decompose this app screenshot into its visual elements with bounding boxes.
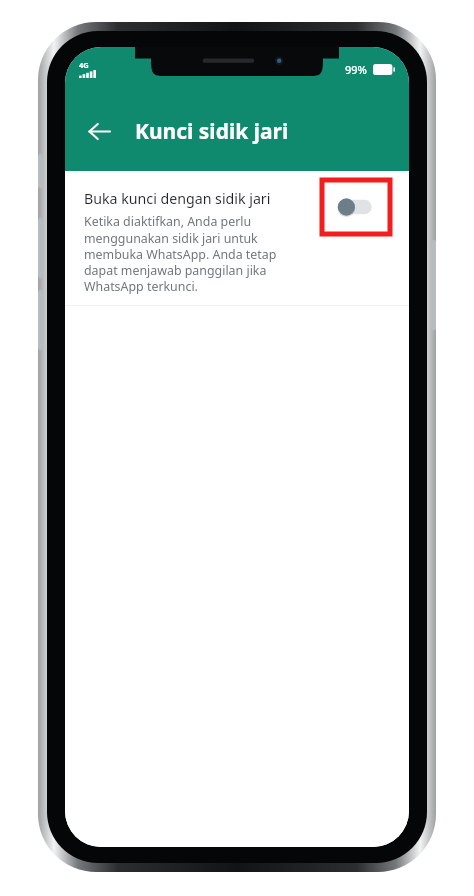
button[interactable]: Buka kunci dengan sidik jari	[65, 171, 409, 305]
staticText: 4G	[79, 60, 89, 70]
button[interactable]: Back	[75, 107, 123, 155]
staticText: Buka kunci dengan sidik jari	[84, 189, 271, 208]
staticText: Ketika diaktifkan, Anda perlu menggunaka…	[84, 213, 309, 295]
staticText: 99%	[345, 62, 367, 77]
button[interactable]: Unlock with fingerprint toggle	[320, 178, 392, 236]
staticText: Kunci sidik jari	[135, 117, 289, 146]
